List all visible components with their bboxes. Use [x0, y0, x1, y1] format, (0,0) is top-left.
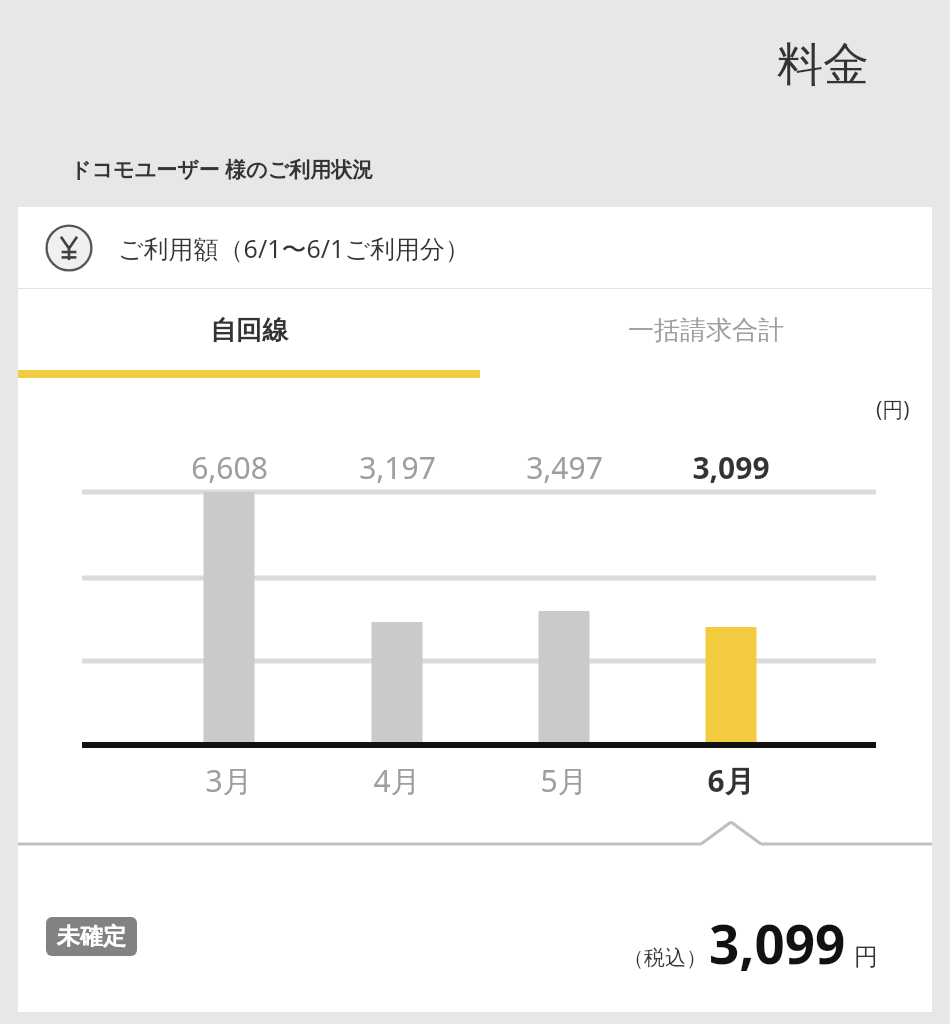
staticText: 円 — [854, 942, 878, 972]
button[interactable]: 自回線 — [18, 289, 480, 372]
staticText: 5月 — [540, 760, 588, 801]
staticText: 3月 — [205, 760, 253, 801]
button[interactable]: 未確定 — [18, 845, 932, 1013]
staticText: 料金 — [777, 36, 869, 94]
staticText: 6月 — [707, 760, 755, 801]
other: Usage amount — [45, 224, 93, 272]
staticText: 3,099 — [709, 907, 846, 979]
button[interactable]: Usage amount — [18, 207, 932, 288]
staticText: 自回線 — [210, 314, 288, 347]
staticText: 6,608 — [191, 447, 268, 488]
staticText: 未確定 — [57, 922, 126, 951]
button[interactable]: 一括請求合計 — [480, 289, 932, 372]
staticText: ドコモユーザー 様のご利用状況 — [70, 155, 373, 184]
staticText: （税込） — [623, 945, 707, 971]
staticText: 3,099 — [692, 447, 770, 488]
staticText: 3,197 — [359, 447, 436, 488]
staticText: ご利用額（6/1〜6/1ご利用分） — [118, 231, 470, 265]
staticText: 4月 — [373, 760, 421, 801]
staticText: (円) — [876, 395, 910, 424]
staticText: 一括請求合計 — [628, 314, 784, 347]
staticText: 3,497 — [526, 447, 603, 488]
